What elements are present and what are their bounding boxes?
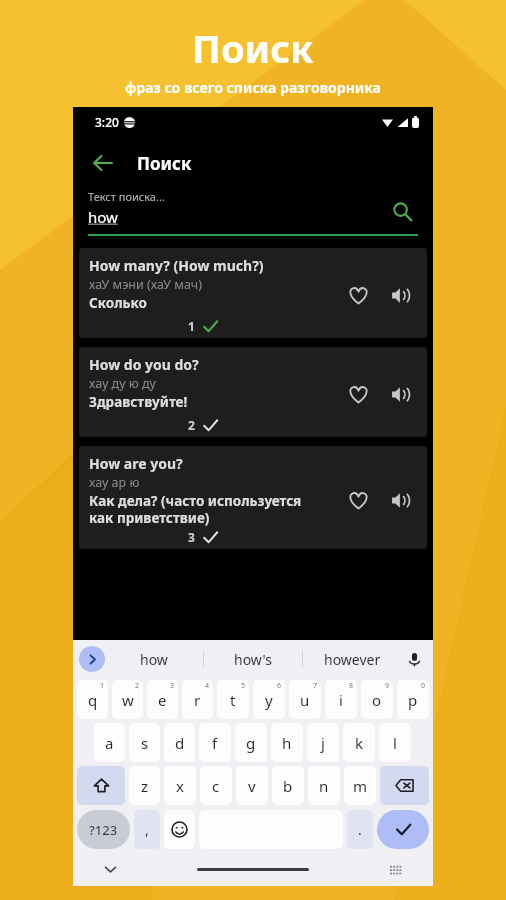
staticText: Текст поиска...	[88, 189, 165, 204]
button[interactable]: ?123	[77, 810, 130, 849]
staticText: how	[140, 650, 168, 669]
staticText: m	[353, 776, 368, 796]
button[interactable]: Expand suggestions	[79, 646, 105, 672]
button[interactable]: m	[344, 766, 376, 805]
staticText: how's	[234, 650, 272, 669]
button[interactable]: v	[236, 766, 268, 805]
staticText: t	[230, 690, 236, 710]
button[interactable]: Enter	[377, 810, 429, 849]
button[interactable]: Favorite	[337, 373, 379, 415]
staticText: j	[321, 733, 325, 753]
staticText: 1	[188, 318, 195, 334]
button[interactable]: Hide keyboard	[95, 854, 125, 884]
staticText: 1	[100, 681, 105, 691]
button[interactable]: Backspace	[380, 766, 429, 805]
button[interactable]: z	[129, 766, 160, 805]
button[interactable]: Play sound	[379, 274, 421, 316]
button[interactable]: Comma	[134, 810, 160, 849]
button[interactable]: y	[253, 680, 285, 719]
staticText: i	[339, 690, 343, 710]
button[interactable]: however	[303, 640, 401, 678]
staticText: How many? (How much?)	[89, 256, 264, 275]
staticText: x	[176, 776, 184, 796]
staticText: хаУ мэни (хаУ мач)	[89, 276, 202, 293]
button[interactable]: w	[112, 680, 143, 719]
button[interactable]: n	[308, 766, 340, 805]
button[interactable]: s	[129, 723, 160, 762]
button[interactable]: f	[199, 723, 231, 762]
button[interactable]: How do you do?	[79, 347, 427, 437]
button[interactable]: d	[164, 723, 195, 762]
staticText: d	[175, 733, 185, 753]
staticText: .	[358, 820, 362, 839]
button[interactable]: How are you?	[79, 446, 427, 549]
button[interactable]: Play sound	[379, 373, 421, 415]
button[interactable]: p	[397, 680, 429, 719]
button[interactable]: How many? (How much?)	[79, 248, 427, 338]
staticText: 3:20	[95, 114, 119, 130]
staticText: Здравствуйте!	[89, 393, 188, 411]
button[interactable]: how's	[204, 640, 302, 678]
button[interactable]: k	[343, 723, 375, 762]
staticText: q	[88, 690, 98, 710]
staticText: how	[88, 207, 118, 227]
button[interactable]: Shift	[77, 766, 125, 805]
button[interactable]: Change keyboard	[381, 854, 411, 884]
button[interactable]: Search	[386, 195, 418, 227]
button[interactable]: Voice input	[401, 640, 427, 678]
staticText: 3	[170, 681, 175, 691]
staticText: 2	[188, 417, 195, 433]
staticText: w	[122, 690, 134, 710]
staticText: u	[300, 690, 310, 710]
staticText: b	[283, 776, 293, 796]
button[interactable]: t	[217, 680, 249, 719]
staticText: n	[319, 776, 329, 796]
staticText: хау ар ю	[89, 474, 140, 491]
staticText: 2	[135, 681, 140, 691]
button[interactable]: q	[77, 680, 108, 719]
staticText: 0	[421, 681, 426, 691]
staticText: 6	[277, 681, 282, 691]
button[interactable]: h	[271, 723, 303, 762]
button[interactable]: g	[235, 723, 267, 762]
staticText: 7	[313, 681, 318, 691]
button[interactable]: Back	[83, 143, 123, 183]
button[interactable]: i	[325, 680, 357, 719]
staticText: How do you do?	[89, 355, 199, 374]
button[interactable]: a	[94, 723, 125, 762]
staticText: Поиск	[137, 152, 192, 175]
staticText: h	[282, 733, 292, 753]
staticText: 3	[188, 529, 195, 545]
button[interactable]: x	[164, 766, 196, 805]
button[interactable]: c	[200, 766, 232, 805]
staticText: however	[324, 650, 381, 669]
button[interactable]: r	[182, 680, 213, 719]
button[interactable]: Play sound	[379, 479, 421, 521]
button[interactable]: Favorite	[337, 479, 379, 521]
button[interactable]: j	[307, 723, 339, 762]
button[interactable]: how	[105, 640, 203, 678]
staticText: хау ду ю ду	[89, 375, 156, 392]
staticText: c	[212, 776, 220, 796]
staticText: y	[265, 690, 273, 710]
button[interactable]: o	[361, 680, 393, 719]
button[interactable]: Favorite	[337, 274, 379, 316]
button[interactable]: Period	[347, 810, 373, 849]
button[interactable]: e	[147, 680, 178, 719]
staticText: Как дела? (часто используется как привет…	[89, 492, 302, 527]
button[interactable]: l	[379, 723, 411, 762]
staticText: 5	[241, 681, 246, 691]
staticText: How are you?	[89, 454, 183, 473]
staticText: фраз со всего списка разговорника	[125, 78, 381, 97]
staticText: f	[212, 733, 218, 753]
staticText: z	[141, 776, 149, 796]
button[interactable]: u	[289, 680, 321, 719]
staticText: v	[248, 776, 256, 796]
button[interactable]: b	[272, 766, 304, 805]
staticText: Поиск	[192, 22, 314, 74]
button[interactable]: Emoji	[164, 810, 195, 849]
staticText: g	[246, 733, 256, 753]
staticText: r	[194, 690, 201, 710]
staticText: 9	[385, 681, 390, 691]
